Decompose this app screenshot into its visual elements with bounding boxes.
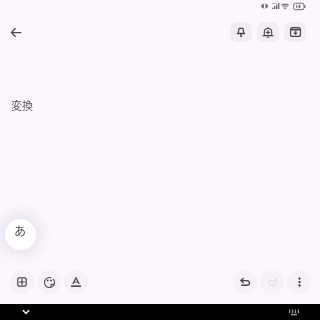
button[interactable]: Archive: [284, 22, 306, 42]
staticText: 変換: [11, 97, 33, 113]
button[interactable]: Add reminder: [257, 22, 279, 42]
button[interactable]: Undo: [233, 270, 257, 294]
button[interactable]: Redo: [260, 270, 284, 294]
staticText: あ: [14, 222, 27, 239]
button[interactable]: Format text: [64, 270, 88, 294]
button[interactable]: Hide keyboard: [17, 304, 35, 320]
button[interactable]: Add: [10, 270, 34, 294]
button[interactable]: Switch keyboard: [285, 304, 303, 320]
button[interactable]: Back: [4, 20, 28, 44]
button[interactable]: Pin: [230, 22, 252, 42]
button[interactable]: More options: [287, 270, 311, 294]
button[interactable]: Input method: [5, 219, 36, 250]
button[interactable]: Color: [37, 270, 61, 294]
